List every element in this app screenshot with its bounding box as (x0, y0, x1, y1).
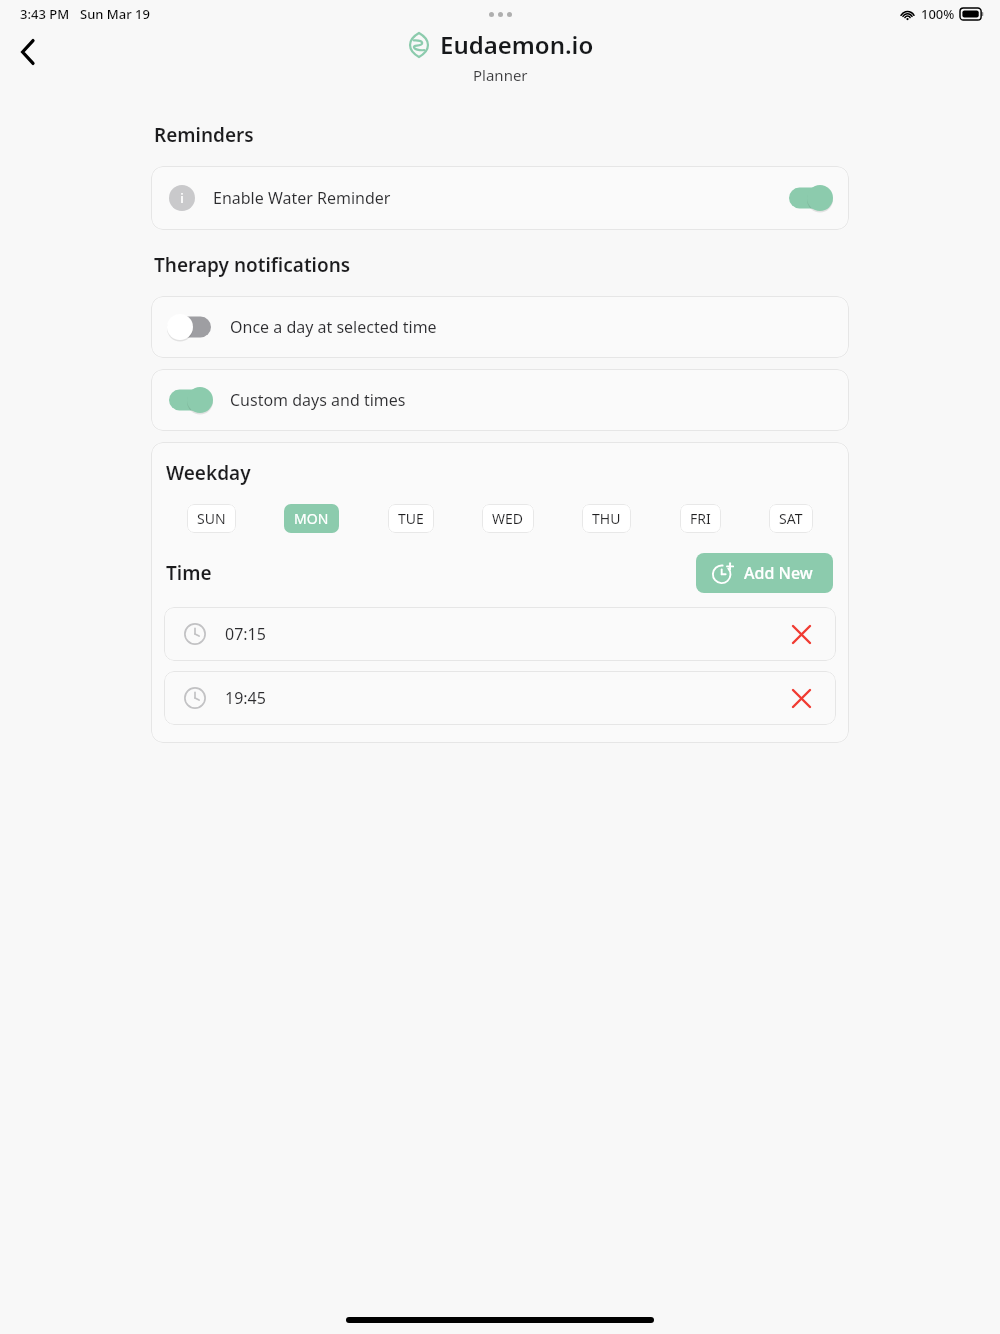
staticText: Sun Mar 19 (80, 5, 150, 23)
button[interactable]: On (789, 185, 831, 211)
button[interactable]: SAT (769, 504, 813, 533)
staticText: TUE (398, 509, 424, 528)
button[interactable]: FRI (680, 504, 721, 533)
button[interactable]: On (169, 387, 211, 413)
button[interactable]: SUN (187, 504, 236, 533)
staticText: THU (592, 509, 621, 528)
staticText: Reminders (154, 122, 254, 148)
button[interactable]: MON (284, 504, 339, 533)
button[interactable]: TUE (388, 504, 434, 533)
button[interactable]: Off (151, 296, 849, 358)
button[interactable]: WED (482, 504, 534, 533)
staticText: MON (294, 509, 329, 528)
staticText: FRI (690, 509, 711, 528)
staticText: Planner (473, 65, 528, 85)
staticText: 100% (921, 5, 955, 23)
button[interactable]: Add New (696, 553, 833, 593)
button[interactable]: 19:45 (164, 671, 836, 725)
staticText: WED (492, 509, 524, 528)
staticText: Therapy notifications (154, 252, 351, 278)
staticText: Weekday (166, 460, 251, 486)
staticText: Enable Water Reminder (213, 187, 391, 209)
staticText: Add New (744, 562, 813, 584)
staticText: Custom days and times (230, 389, 406, 411)
staticText: 3:43 PM (20, 5, 70, 23)
button[interactable]: i (151, 166, 849, 230)
staticText: Once a day at selected time (230, 316, 437, 338)
staticText: Time (166, 560, 212, 586)
staticText: 07:15 (225, 623, 266, 645)
button[interactable]: THU (582, 504, 631, 533)
button[interactable]: 07:15 (164, 607, 836, 661)
button[interactable]: On (151, 369, 849, 431)
staticText: Eudaemon.io (440, 28, 594, 61)
button[interactable]: Delete time (788, 621, 814, 647)
staticText: SAT (779, 509, 803, 528)
staticText: 19:45 (225, 687, 266, 709)
staticText: i (180, 189, 184, 207)
button[interactable]: Off (169, 314, 211, 340)
button[interactable]: Back (6, 30, 50, 74)
button[interactable]: Delete time (788, 685, 814, 711)
staticText: SUN (197, 509, 226, 528)
